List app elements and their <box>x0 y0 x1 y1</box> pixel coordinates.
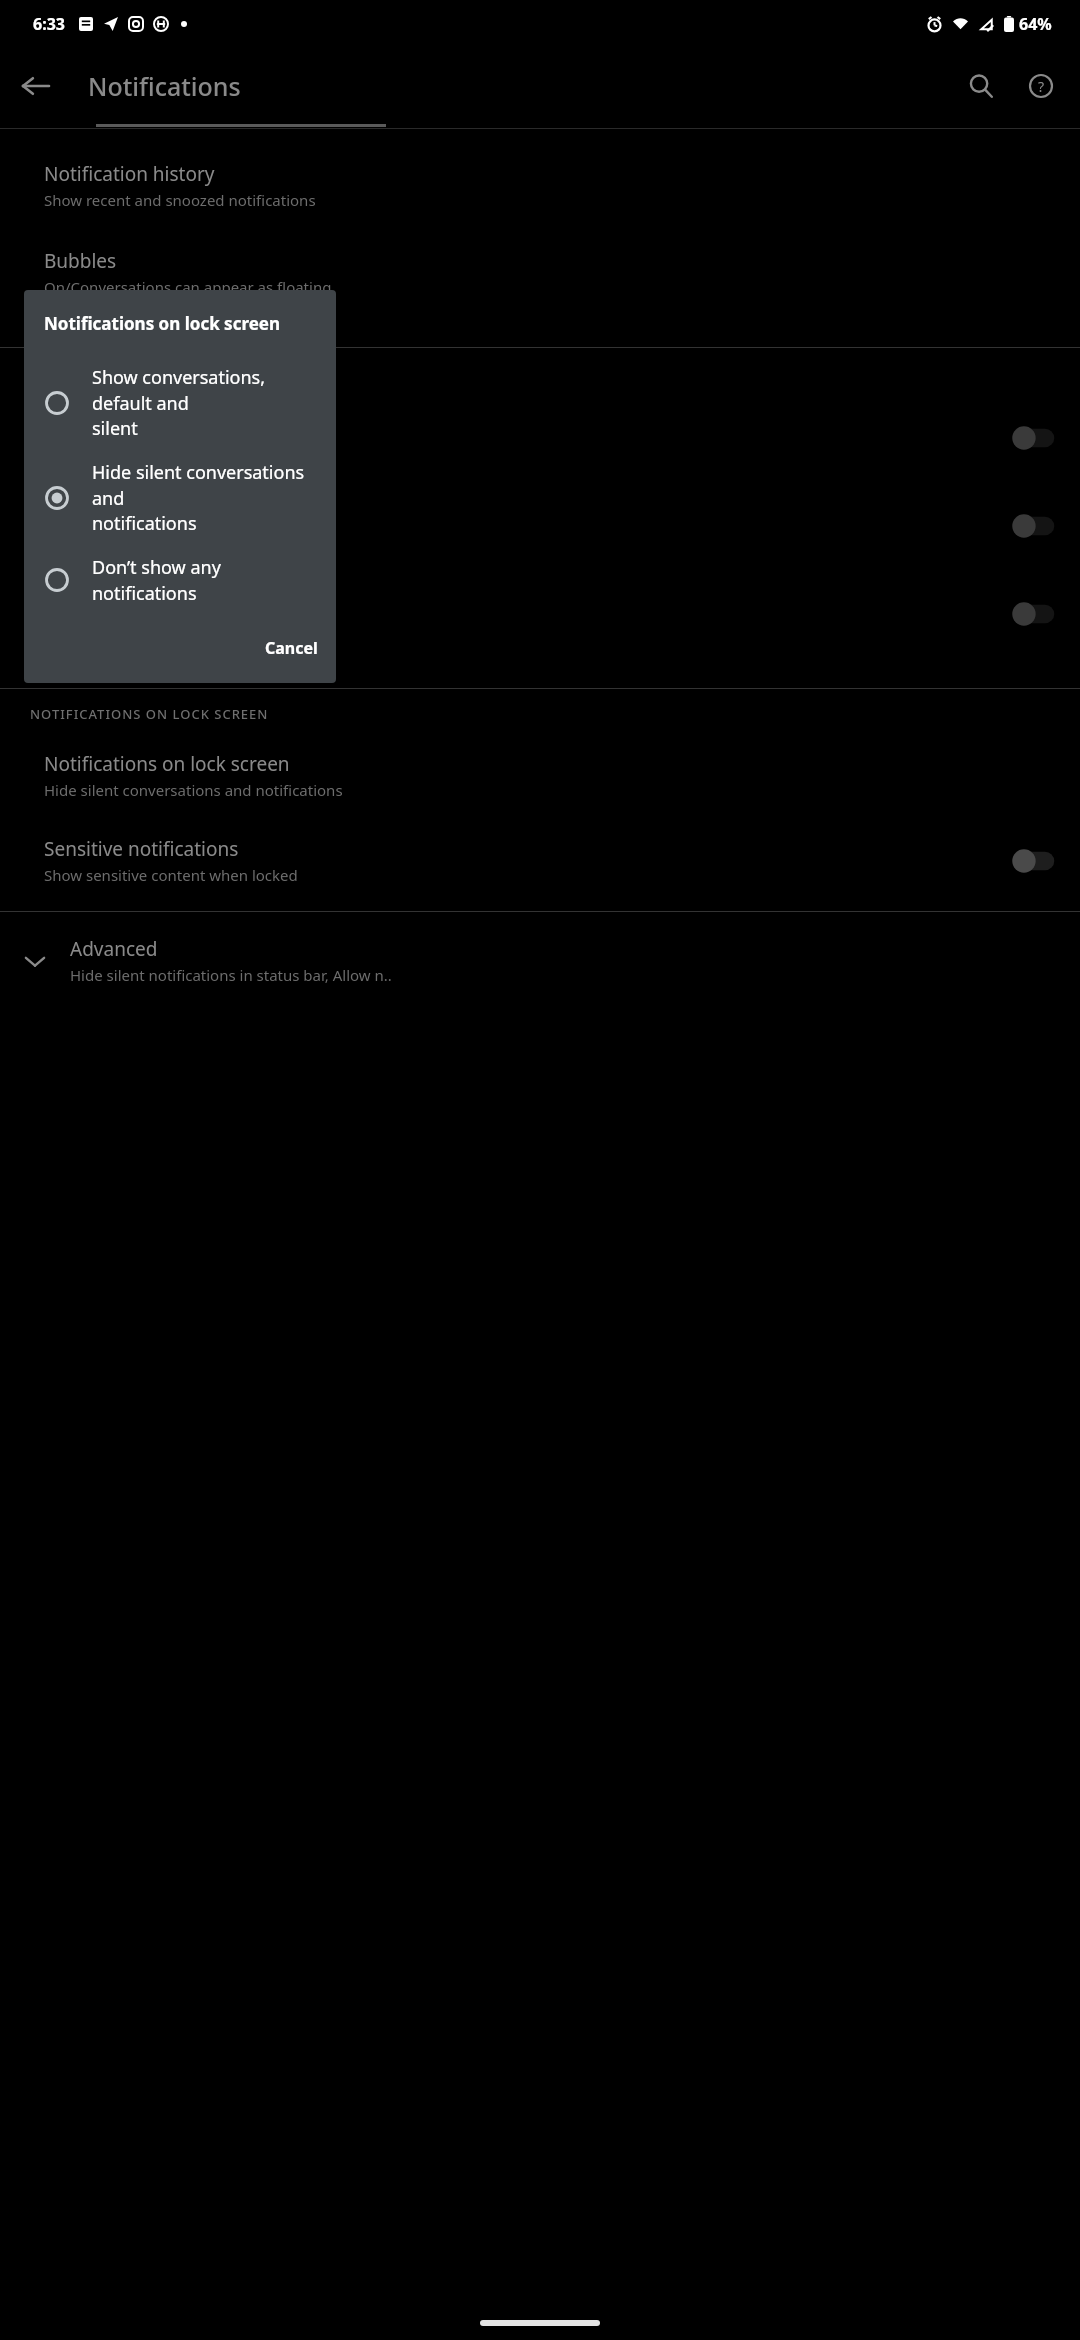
staticText: Don’t show any notifications <box>92 555 320 605</box>
staticText: Show sensitive content when locked <box>44 865 298 885</box>
button[interactable] <box>0 394 1080 482</box>
staticText: Advanced <box>70 936 158 962</box>
button[interactable]: Bubbles <box>0 242 1080 325</box>
staticText: ? <box>1038 77 1045 96</box>
staticText: Show conversations, default and silent <box>92 365 320 440</box>
button[interactable]: Don’t show any notifications <box>24 545 336 615</box>
staticText: NOTIFICATIONS ON LOCK SCREEN <box>30 705 269 723</box>
staticText: Hide silent conversations and notificati… <box>92 460 320 535</box>
staticText: Show recent and snoozed notifications <box>44 190 316 210</box>
button[interactable] <box>0 482 1080 570</box>
button[interactable]: Cancel <box>247 629 336 667</box>
staticText: Notifications <box>88 69 241 103</box>
staticText: 64% <box>1019 13 1052 35</box>
staticText: Notifications on lock screen <box>44 751 290 777</box>
staticText: Notification history <box>44 161 215 187</box>
button[interactable]: Hide silent conversations and notificati… <box>24 450 336 545</box>
staticText: 6:33 <box>33 13 65 35</box>
staticText: Notifications on lock screen <box>44 312 281 335</box>
staticText: RECENTLY SENT <box>30 366 141 384</box>
button[interactable]: Help <box>1014 59 1068 113</box>
button[interactable]: Back <box>8 58 64 114</box>
button[interactable]: Sensitive notifications <box>0 830 1080 891</box>
staticText: Cancel <box>265 637 318 659</box>
button[interactable]: Show conversations, default and silent <box>24 355 336 450</box>
button[interactable]: Notifications on lock screen <box>0 745 1080 806</box>
staticText: Bubbles <box>44 248 117 274</box>
button[interactable]: Search <box>954 59 1008 113</box>
button[interactable]: Advanced <box>0 930 1080 991</box>
button[interactable]: Notification history <box>0 155 1080 216</box>
staticText: Hide silent notifications in status bar,… <box>70 965 392 985</box>
button[interactable] <box>0 570 1080 658</box>
staticText: On/Conversations can appear as floating … <box>44 277 332 319</box>
staticText: Sensitive notifications <box>44 836 239 862</box>
staticText: Hide silent conversations and notificati… <box>44 780 343 800</box>
